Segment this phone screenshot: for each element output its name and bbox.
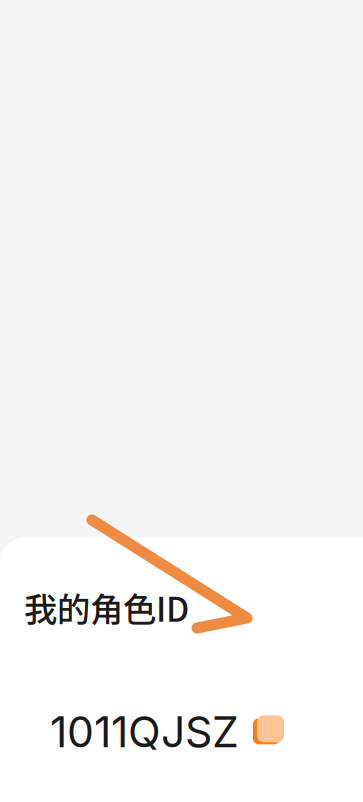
staticText: 1011QJSZ	[50, 706, 239, 758]
button[interactable]: Copy character ID 1011QJSZ	[42, 698, 292, 766]
staticText: 我的角色ID	[24, 583, 189, 631]
